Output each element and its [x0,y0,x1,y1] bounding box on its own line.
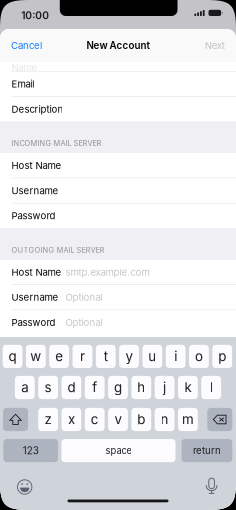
staticText: t [104,348,108,364]
staticText: e [55,348,63,364]
button[interactable]: f [85,376,105,399]
staticText: h [137,379,145,395]
button[interactable]: Emoji keyboard [15,477,35,497]
button[interactable]: h [131,376,151,399]
button[interactable]: Cancel [0,29,46,62]
button[interactable]: l [201,376,221,399]
staticText: x [68,411,75,427]
button[interactable]: Shift [3,408,28,431]
button[interactable]: Delete [207,408,232,431]
button[interactable]: Dictation [202,477,222,497]
staticText: p [218,348,226,364]
button[interactable]: k [178,376,198,399]
button[interactable]: m [178,408,198,431]
staticText: Password [11,210,55,222]
button[interactable]: Username [0,178,236,203]
staticText: Username [11,185,58,196]
button[interactable]: d [61,376,81,399]
staticText: a [21,379,28,395]
staticText: k [184,379,191,395]
button[interactable]: q [3,345,22,368]
staticText: smtp.example.com [66,266,150,278]
staticText: Description [11,103,63,115]
staticText: New Account [86,40,149,51]
staticText: 123 [23,445,39,456]
button[interactable]: u [142,345,162,368]
staticText: Host Name [11,160,61,171]
button[interactable]: c [85,408,105,431]
button[interactable]: o [189,345,209,368]
staticText: w [30,348,41,364]
button[interactable]: r [72,345,92,368]
staticText: Host Name [11,266,61,278]
button[interactable]: w [26,345,46,368]
staticText: Username [11,291,58,303]
staticText: m [182,411,194,427]
staticText: c [91,411,99,427]
staticText: Optional [66,317,103,328]
staticText: q [8,348,16,364]
button[interactable]: space [61,439,175,462]
button[interactable]: s [38,376,58,399]
button[interactable]: Password [0,204,236,228]
staticText: Password [11,317,55,328]
staticText: s [45,379,52,395]
button[interactable]: Next [194,29,236,62]
staticText: OUTGOING MAIL SERVER [11,245,104,254]
button[interactable]: j [155,376,174,399]
button[interactable]: 123 [3,439,58,462]
button[interactable]: Host Name [0,153,236,178]
staticText: 10:00 [21,9,49,22]
button[interactable]: i [166,345,186,368]
button[interactable]: g [108,376,128,399]
button[interactable]: Username [0,285,236,310]
button[interactable]: v [108,408,128,431]
staticText: Next [205,40,225,51]
button[interactable]: n [155,408,174,431]
staticText: Name [11,62,37,73]
staticText: b [137,411,145,427]
button[interactable]: a [15,376,35,399]
button[interactable]: z [38,408,58,431]
button[interactable]: t [96,345,116,368]
staticText: space [105,445,131,456]
staticText: l [210,379,213,395]
button[interactable]: Password [0,310,236,335]
staticText: f [92,379,97,395]
button[interactable]: b [131,408,151,431]
button[interactable]: Description [0,97,236,121]
staticText: return [193,445,221,456]
button[interactable]: p [212,345,232,368]
staticText: Optional [66,291,103,303]
button[interactable]: y [119,345,139,368]
button[interactable]: return [181,439,232,462]
staticText: j [163,379,166,395]
staticText: g [114,379,122,395]
button[interactable]: Host Name [0,260,236,284]
staticText: Email [11,78,34,90]
staticText: o [195,348,203,364]
staticText: INCOMING MAIL SERVER [11,139,101,148]
staticText: i [174,348,177,364]
button[interactable]: x [61,408,81,431]
staticText: r [80,348,85,364]
staticText: v [114,411,121,427]
staticText: z [45,411,52,427]
staticText: n [161,411,169,427]
staticText: u [148,348,156,364]
button[interactable]: Email [0,72,236,96]
staticText: d [67,379,75,395]
staticText: y [125,348,132,364]
staticText: Cancel [11,40,42,51]
button[interactable]: e [49,345,69,368]
